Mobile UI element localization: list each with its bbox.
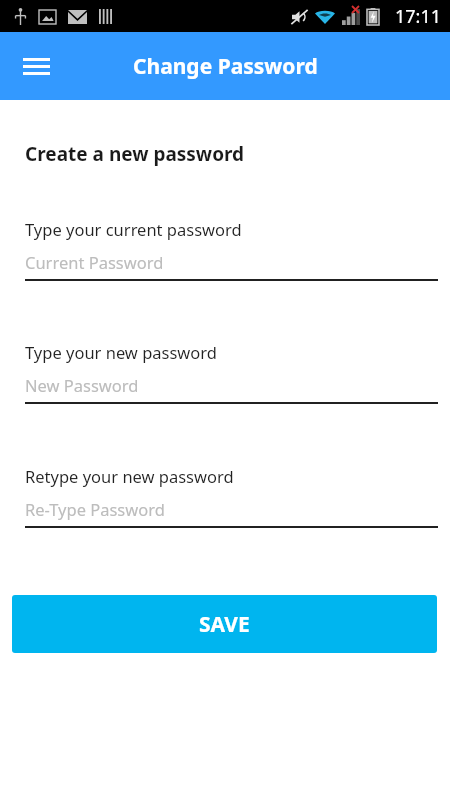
button[interactable]: Current Password bbox=[25, 251, 438, 281]
staticText: New Password bbox=[25, 374, 139, 396]
button[interactable]: New Password bbox=[25, 374, 438, 404]
staticText: Type your new password bbox=[25, 341, 217, 363]
staticText: Current Password bbox=[25, 251, 164, 273]
button[interactable]: Re-Type Password bbox=[25, 498, 438, 528]
button[interactable]: SAVE bbox=[12, 595, 437, 653]
staticText: 17:11 bbox=[395, 4, 442, 29]
staticText: Change Password bbox=[133, 52, 318, 81]
staticText: SAVE bbox=[199, 610, 250, 639]
button[interactable]: Open navigation menu bbox=[10, 40, 62, 92]
staticText: Create a new password bbox=[25, 141, 245, 167]
staticText: Retype your new password bbox=[25, 465, 234, 487]
staticText: Re-Type Password bbox=[25, 498, 165, 520]
staticText: Type your current password bbox=[25, 218, 242, 240]
